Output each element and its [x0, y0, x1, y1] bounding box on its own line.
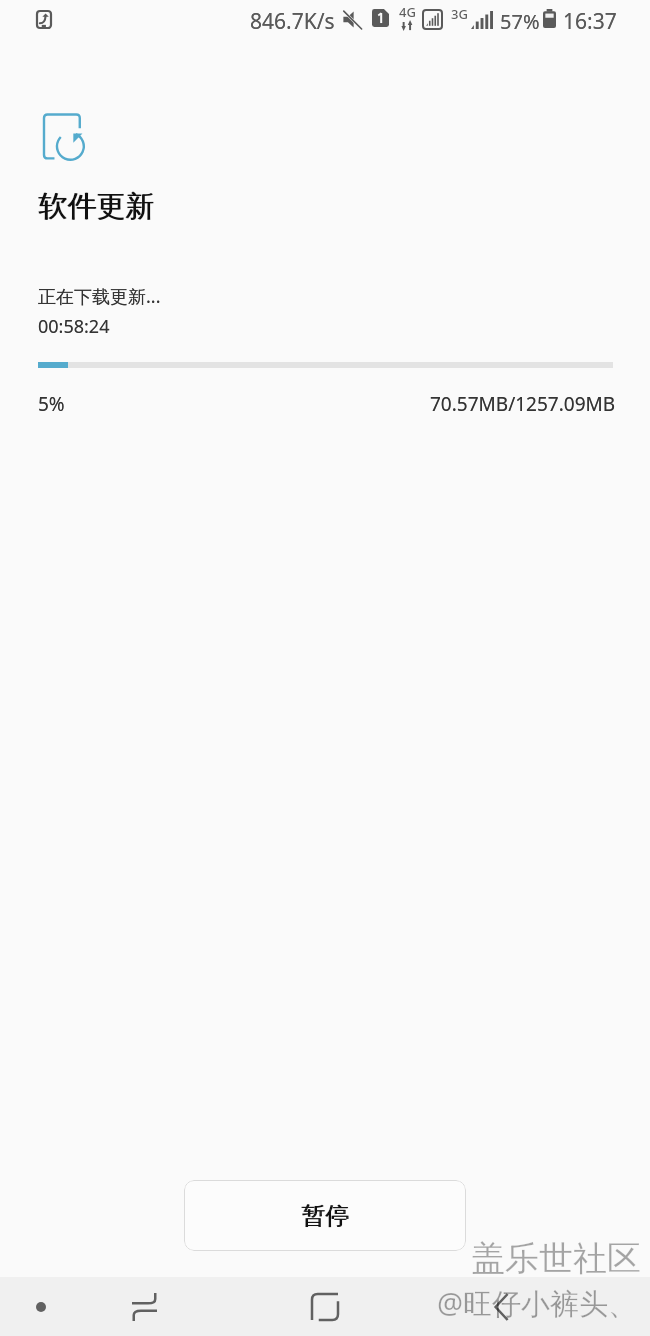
staticText: 5% [38, 391, 65, 417]
staticText: 70.57MB/1257.09MB [430, 391, 616, 417]
staticText: 16:37 [563, 7, 617, 36]
staticText: 3G [451, 5, 468, 23]
staticText: 正在下载更新... [38, 284, 161, 309]
button[interactable]: Back [462, 1279, 542, 1335]
staticText: 软件更新 [38, 188, 154, 225]
staticText: 70.57MB/1257.09MB [430, 391, 616, 417]
staticText: 00:58:24 [38, 314, 110, 339]
staticText: 暂停 [301, 1201, 349, 1231]
staticText: 4G [399, 3, 416, 21]
staticText: @旺仔小裤头、 [437, 1283, 638, 1323]
staticText: 16:37 [563, 7, 617, 36]
button[interactable]: Home [285, 1279, 365, 1335]
staticText: 盖乐世社区 [471, 1237, 641, 1280]
staticText: 846.7K/s [250, 7, 335, 36]
staticText: 57% [500, 8, 540, 35]
staticText: 846.7K/s [250, 7, 335, 36]
button[interactable]: Recents [104, 1279, 184, 1335]
button[interactable]: 暂停 [184, 1180, 466, 1251]
staticText: 暂停 [302, 1201, 350, 1231]
staticText: 00:58:24 [38, 314, 110, 339]
staticText: 5% [38, 391, 65, 417]
staticText: 57% [500, 8, 540, 35]
button[interactable]: Hide navigation bar [20, 1286, 62, 1328]
staticText: 软件更新 [39, 188, 155, 225]
staticText: 正在下载更新... [38, 284, 161, 309]
